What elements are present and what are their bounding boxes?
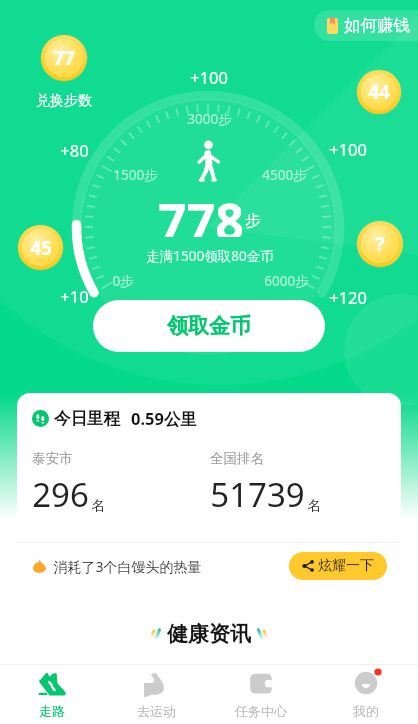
- staticText: +100: [329, 138, 367, 160]
- staticText: 我的: [353, 703, 379, 719]
- staticText: 名: [91, 497, 105, 514]
- staticText: 消耗了3个白馒头的热量: [53, 557, 202, 576]
- button[interactable]: 金币 45: [17, 224, 64, 271]
- staticText: 健康资讯: [167, 621, 251, 647]
- staticText: 走路: [39, 703, 65, 719]
- staticText: 今日里程: [54, 408, 120, 429]
- button[interactable]: 炫耀一下: [289, 552, 387, 580]
- staticText: 去运动: [137, 703, 176, 719]
- button[interactable]: 去运动: [104, 665, 208, 724]
- staticText: ?: [375, 231, 385, 257]
- button[interactable]: 金币 ?: [356, 220, 404, 268]
- staticText: 45: [30, 235, 52, 261]
- staticText: 泰安市: [32, 450, 73, 467]
- button[interactable]: 如何赚钱: [314, 10, 418, 41]
- staticText: +10: [60, 285, 89, 307]
- staticText: 296: [32, 472, 89, 517]
- staticText: 任务中心: [235, 703, 287, 719]
- staticText: 如何赚钱: [344, 15, 410, 36]
- staticText: 全国排名: [210, 450, 264, 467]
- staticText: 1500步: [113, 166, 158, 184]
- staticText: +120: [329, 286, 367, 308]
- staticText: 名: [307, 497, 321, 514]
- staticText: 领取金币: [167, 313, 251, 339]
- staticText: 步: [245, 211, 261, 231]
- staticText: 778: [158, 187, 244, 237]
- staticText: 走满1500领取80金币: [146, 247, 274, 265]
- staticText: 44: [368, 79, 390, 105]
- staticText: 4500步: [262, 166, 307, 184]
- button[interactable]: 走路: [0, 665, 104, 724]
- staticText: +80: [60, 139, 89, 161]
- button[interactable]: 领取金币: [93, 300, 325, 352]
- staticText: 炫耀一下: [318, 557, 374, 575]
- staticText: 77: [53, 45, 75, 71]
- staticText: 51739: [210, 472, 305, 517]
- staticText: 0步: [112, 272, 134, 290]
- button[interactable]: 金币 44: [356, 69, 402, 115]
- staticText: 6000步: [264, 272, 309, 290]
- staticText: +100: [190, 66, 228, 88]
- button[interactable]: 金币 77: [40, 34, 88, 82]
- staticText: 3000步: [187, 110, 232, 128]
- staticText: 兑换步数: [36, 92, 92, 110]
- button[interactable]: 任务中心: [208, 665, 313, 724]
- button[interactable]: 我的: [313, 665, 418, 724]
- staticText: 0.59公里: [131, 407, 197, 430]
